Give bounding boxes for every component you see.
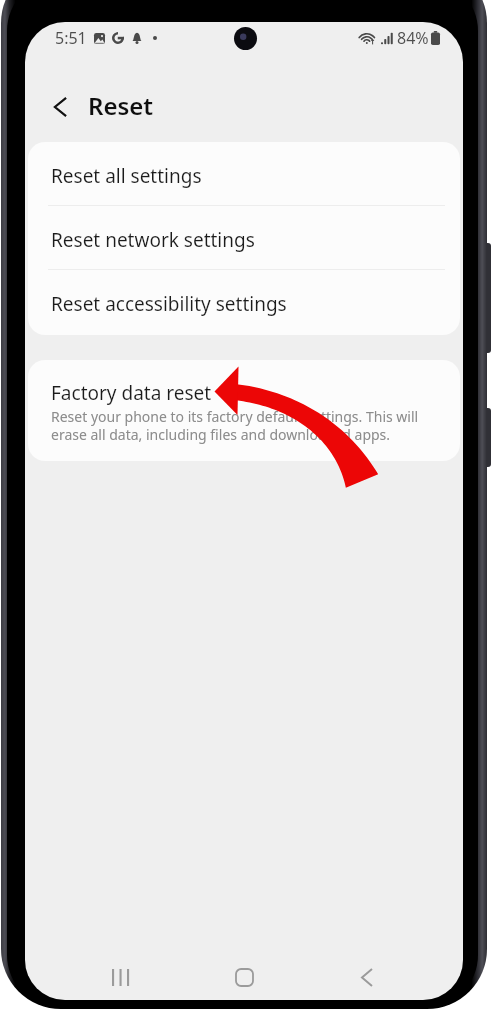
button[interactable]: Reset network settings [28, 206, 460, 270]
staticText: Reset your phone to its factory default … [51, 407, 433, 444]
button[interactable]: Home [221, 955, 267, 1000]
button[interactable]: Factory data reset [28, 360, 460, 461]
staticText: Reset all settings [51, 163, 202, 189]
button[interactable]: Back [344, 955, 390, 1000]
staticText: Reset accessibility settings [51, 291, 287, 317]
staticText: 5:51 [55, 27, 87, 49]
button[interactable]: Recent apps [98, 955, 144, 1000]
staticText: Reset [88, 89, 154, 122]
staticText: 84% [397, 27, 429, 49]
button[interactable]: Reset all settings [28, 142, 460, 206]
button[interactable]: Reset accessibility settings [28, 270, 460, 334]
staticText: Reset network settings [51, 227, 255, 253]
button[interactable]: Back [40, 87, 80, 127]
staticText: Factory data reset [51, 380, 212, 406]
